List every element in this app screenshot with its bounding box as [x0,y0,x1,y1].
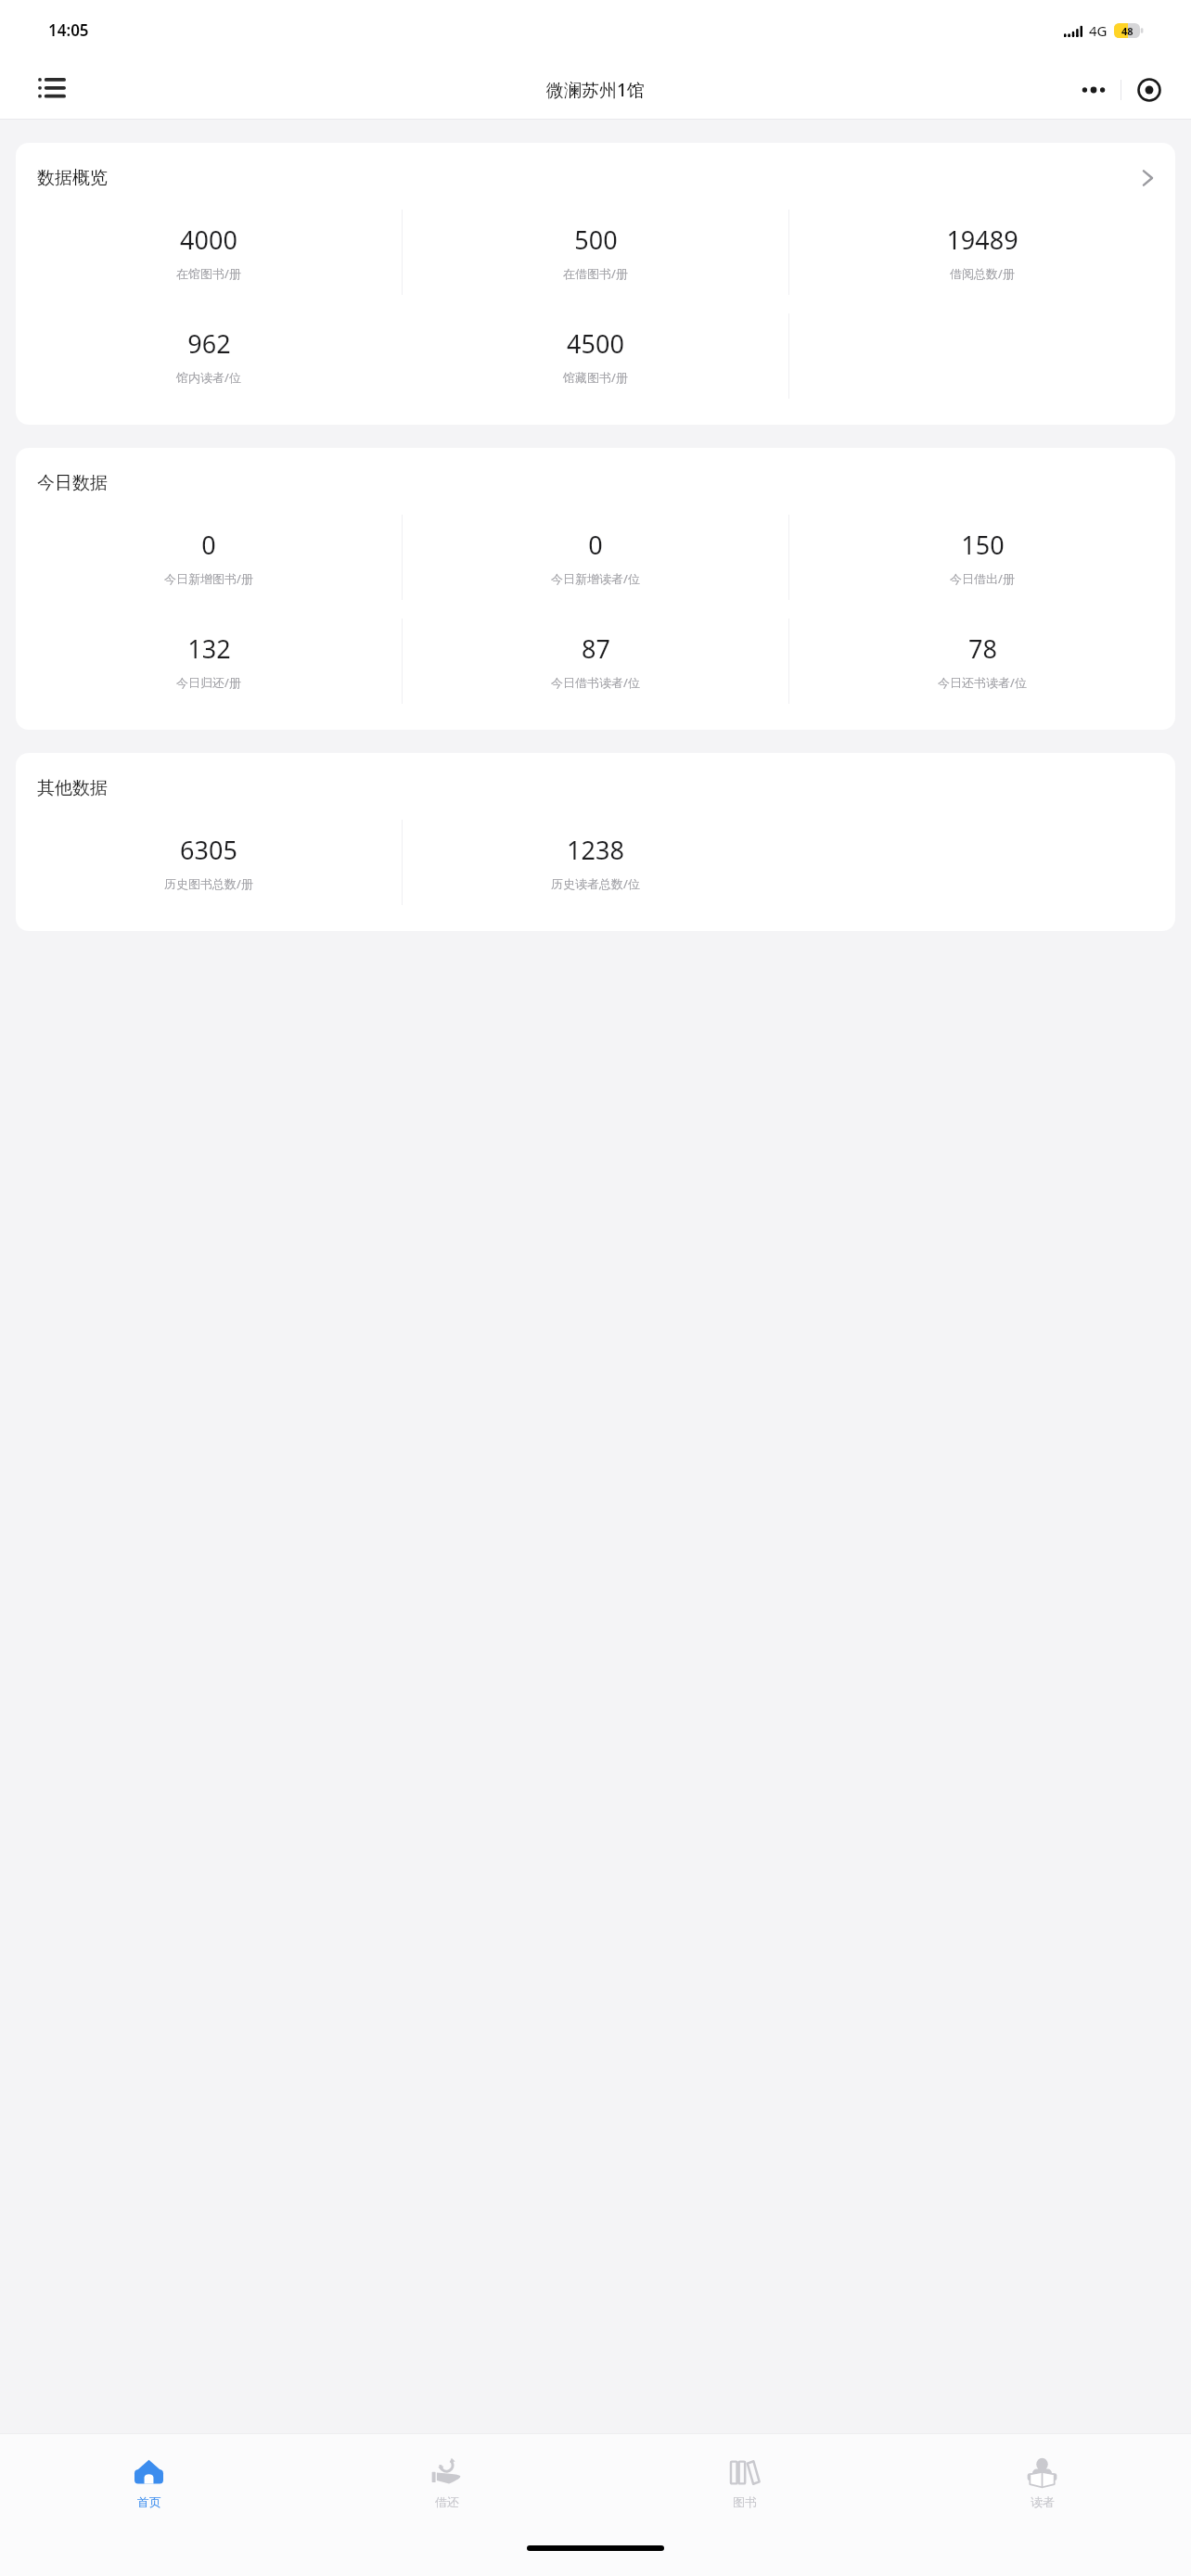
staticText: 其他数据 [37,777,108,799]
button[interactable]: 图书 [595,2434,893,2531]
staticText: 今日借书读者/位 [551,674,640,691]
staticText: 今日借出/册 [950,570,1015,587]
button[interactable]: More [1066,68,1121,112]
button[interactable]: 数据概览 [16,143,1175,425]
staticText: 读者 [1031,2494,1055,2509]
staticText: 4000 [180,223,237,257]
staticText: 962 [187,326,231,361]
staticText: 今日还书读者/位 [938,674,1027,691]
staticText: 在借图书/册 [563,265,628,282]
button[interactable]: 借还 [298,2434,595,2531]
staticText: 今日新增图书/册 [164,570,253,587]
staticText: 馆藏图书/册 [563,369,628,386]
staticText: 图书 [733,2494,757,2509]
staticText: 历史图书总数/册 [164,875,253,892]
staticText: 馆内读者/位 [176,369,241,386]
staticText: 4500 [567,326,624,361]
staticText: 87 [582,631,610,666]
staticText: 14:05 [48,19,89,41]
staticText: 0 [201,528,216,562]
staticText: 150 [961,528,1005,562]
button[interactable]: 其他数据 [16,753,1175,931]
staticText: 500 [574,223,618,257]
staticText: 48 [1121,24,1133,38]
staticText: 数据概览 [37,167,108,189]
button[interactable]: Close [1121,68,1177,112]
staticText: 今日新增读者/位 [551,570,640,587]
staticText: 132 [187,631,231,666]
staticText: 借阅总数/册 [950,265,1015,282]
staticText: 微澜苏州1馆 [546,78,645,102]
staticText: 今日数据 [37,472,108,494]
staticText: 0 [588,528,603,562]
staticText: 19489 [946,223,1018,257]
staticText: 1238 [567,833,624,867]
staticText: 首页 [137,2494,161,2509]
staticText: 今日归还/册 [176,674,241,691]
staticText: 78 [968,631,997,666]
button[interactable]: 今日数据 [16,448,1175,730]
staticText: 借还 [435,2494,459,2509]
button[interactable]: 首页 [0,2434,298,2531]
staticText: 在馆图书/册 [176,265,241,282]
button[interactable]: 读者 [893,2434,1191,2531]
staticText: 4G [1089,21,1108,40]
staticText: 历史读者总数/位 [551,875,640,892]
button[interactable]: Menu [28,66,76,114]
staticText: 6305 [180,833,237,867]
